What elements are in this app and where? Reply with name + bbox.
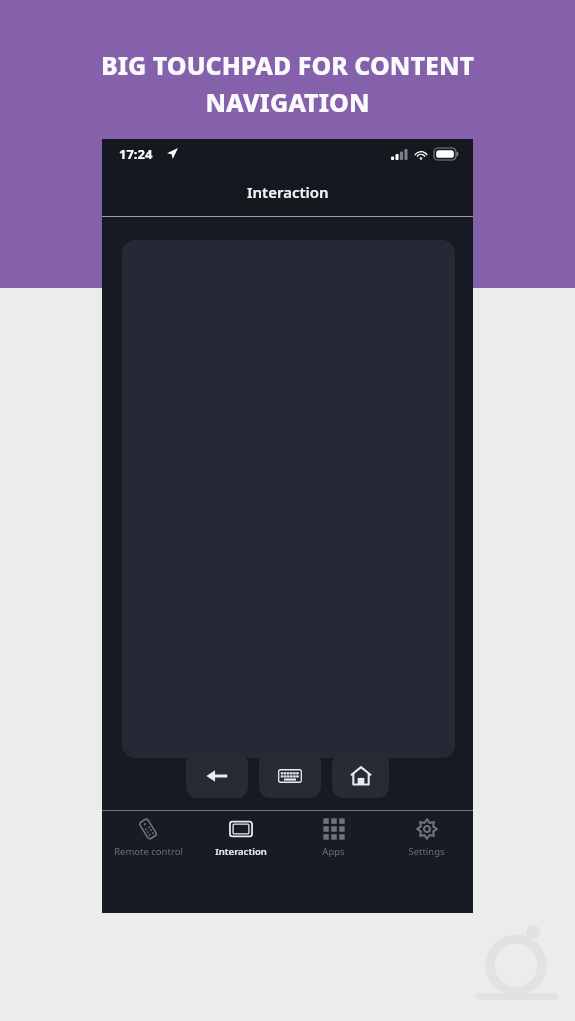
staticText: Interaction	[215, 845, 267, 858]
staticText: Interaction	[247, 182, 329, 202]
staticText: 17:24	[119, 145, 153, 163]
button[interactable]: Apps	[287, 811, 380, 913]
staticText: BIG TOUCHPAD FOR CONTENT NAVIGATION	[28, 48, 547, 119]
button[interactable]: Home	[332, 753, 389, 798]
staticText: Apps	[322, 845, 345, 858]
button[interactable]: Back	[186, 753, 248, 798]
button[interactable]: Settings	[380, 811, 473, 913]
button[interactable]: Keyboard	[259, 753, 321, 798]
staticText: Remote control	[114, 845, 183, 858]
button[interactable]: Remote control	[102, 811, 194, 913]
staticText: Settings	[408, 845, 445, 858]
button[interactable]: Interaction	[194, 811, 287, 913]
